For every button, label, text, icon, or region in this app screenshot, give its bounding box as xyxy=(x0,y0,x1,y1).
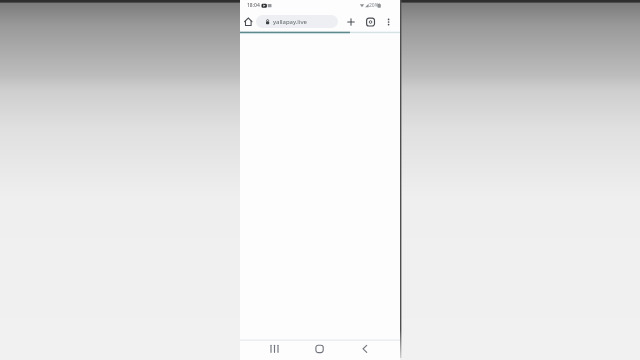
button[interactable] xyxy=(309,341,330,359)
button[interactable] xyxy=(256,15,338,28)
staticText: yallapay.live xyxy=(273,18,307,26)
staticText: 18:04 xyxy=(247,2,260,9)
button[interactable] xyxy=(382,14,395,30)
button[interactable] xyxy=(264,341,285,359)
staticText: 20% xyxy=(369,2,379,9)
button[interactable] xyxy=(242,14,255,30)
button[interactable] xyxy=(354,341,375,359)
button[interactable] xyxy=(363,14,377,30)
button[interactable] xyxy=(344,14,358,30)
